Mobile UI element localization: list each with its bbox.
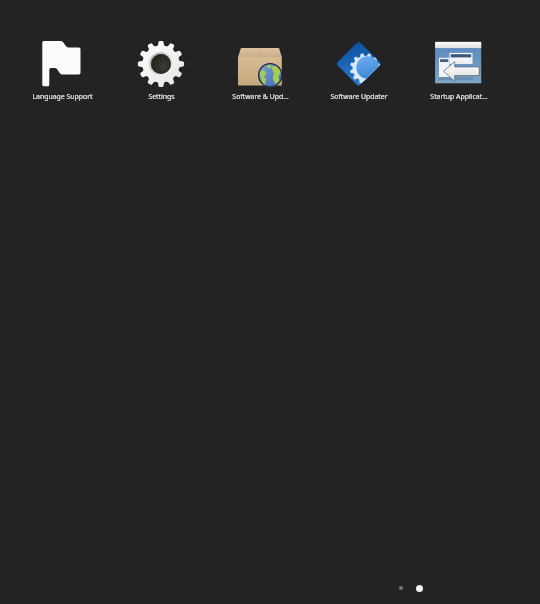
staticText: Software & Upd… (232, 92, 289, 101)
staticText: Startup Applicat… (430, 92, 488, 101)
button[interactable]: Settings (112, 28, 210, 110)
staticText: Language Support (32, 92, 93, 101)
button[interactable]: Startup Applicat… (410, 28, 508, 110)
staticText: Software Updater (330, 92, 388, 101)
staticText: Settings (148, 92, 175, 101)
button[interactable]: Language Support (13, 28, 111, 110)
button[interactable]: Software Updater (310, 28, 408, 110)
button[interactable]: Page 2 (412, 581, 426, 595)
button[interactable]: Software & Upd… (211, 28, 309, 110)
button[interactable]: Page 1 (394, 581, 408, 595)
